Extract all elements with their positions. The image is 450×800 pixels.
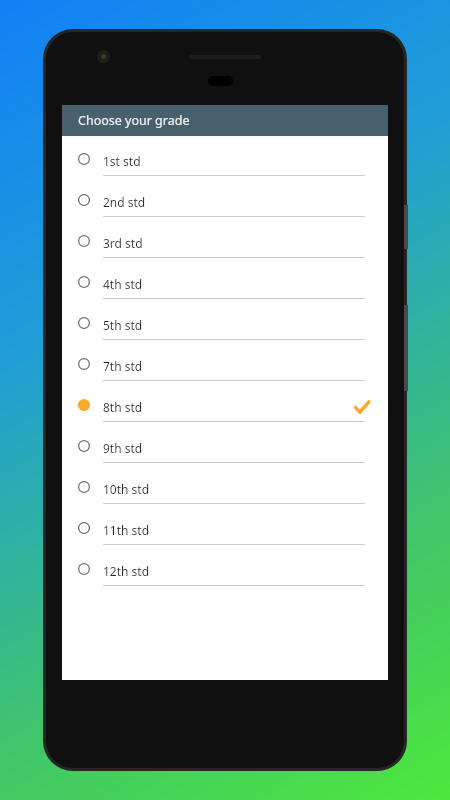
button[interactable]: 12th std [62, 557, 388, 598]
button[interactable]: 10th std [62, 475, 388, 516]
staticText: 12th std [103, 563, 150, 579]
staticText: 3rd std [103, 235, 143, 251]
button[interactable]: 7th std [62, 352, 388, 393]
staticText: 1st std [103, 153, 141, 169]
staticText: 4th std [103, 276, 143, 292]
button[interactable]: 3rd std [62, 229, 388, 270]
staticText: 11th std [103, 522, 150, 538]
staticText: Choose your grade [78, 112, 190, 129]
other: Selected grade [352, 397, 372, 417]
button[interactable]: 5th std [62, 311, 388, 352]
staticText: 2nd std [103, 194, 146, 210]
staticText: 9th std [103, 440, 143, 456]
button[interactable]: 9th std [62, 434, 388, 475]
button[interactable]: Choose your grade [62, 105, 388, 136]
button[interactable]: 4th std [62, 270, 388, 311]
button[interactable]: 1st std [62, 147, 388, 188]
button[interactable]: 2nd std [62, 188, 388, 229]
staticText: 5th std [103, 317, 143, 333]
staticText: 8th std [103, 399, 143, 415]
staticText: 10th std [103, 481, 150, 497]
button[interactable]: 8th std [62, 393, 388, 434]
button[interactable]: 11th std [62, 516, 388, 557]
staticText: 7th std [103, 358, 143, 374]
